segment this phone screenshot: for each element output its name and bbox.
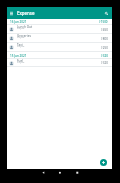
staticText: Fuel	[17, 59, 24, 63]
staticText: 16 Jun	[17, 35, 25, 38]
staticText: ₹250	[101, 46, 108, 50]
staticText: ₹320	[101, 61, 108, 65]
button[interactable]: Menu	[8, 10, 15, 17]
staticText: ₹450	[101, 28, 108, 32]
button[interactable]: Search	[103, 10, 110, 17]
staticText: ₹1500	[99, 20, 108, 24]
staticText: 16 Jun 2021	[10, 20, 27, 24]
staticText: 16 Jun	[17, 44, 25, 47]
staticText: 15 Jun 2021	[10, 54, 27, 58]
button[interactable]: Groceries	[7, 34, 112, 43]
button[interactable]: Lunch Out	[7, 25, 112, 34]
staticText: 16 Jun	[17, 26, 25, 29]
staticText: ₹800	[101, 37, 108, 41]
button[interactable]: Fuel	[7, 59, 112, 67]
staticText: Expense	[17, 10, 35, 16]
button[interactable]: Taxi	[7, 43, 112, 52]
button[interactable]: Add expense	[100, 159, 107, 166]
staticText: Taxi	[17, 43, 23, 47]
staticText: Lunch Out	[17, 25, 33, 29]
staticText: Groceries	[17, 34, 31, 38]
staticText: 15 Jun	[17, 60, 25, 63]
staticText: ₹320	[101, 54, 108, 58]
